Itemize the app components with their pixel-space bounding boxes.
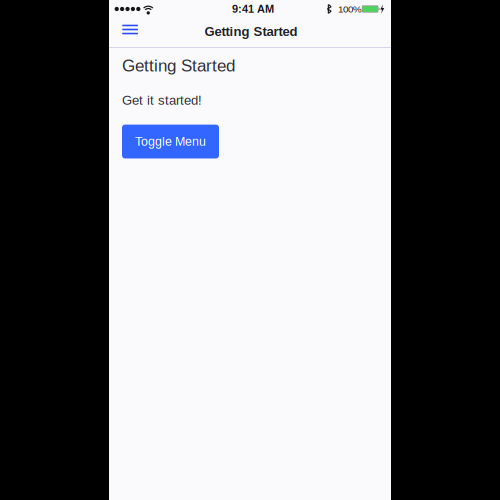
staticText: 100% — [338, 3, 362, 14]
staticText: Getting Started — [204, 24, 297, 39]
button[interactable]: Toggle Menu — [122, 125, 219, 158]
staticText: Get it started! — [122, 93, 202, 108]
button[interactable]: Menu — [109, 18, 391, 47]
staticText: Getting Started — [122, 56, 235, 75]
staticText: 9:41 AM — [232, 3, 274, 15]
staticText: Toggle Menu — [135, 135, 206, 148]
